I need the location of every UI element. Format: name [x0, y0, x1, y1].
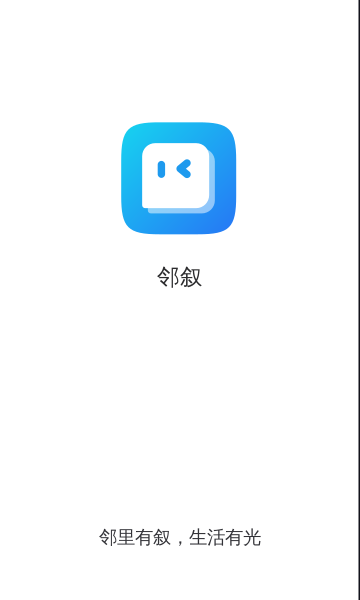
staticText: 邻叙 [157, 263, 203, 292]
staticText: 邻里有叙，生活有光 [99, 526, 261, 549]
